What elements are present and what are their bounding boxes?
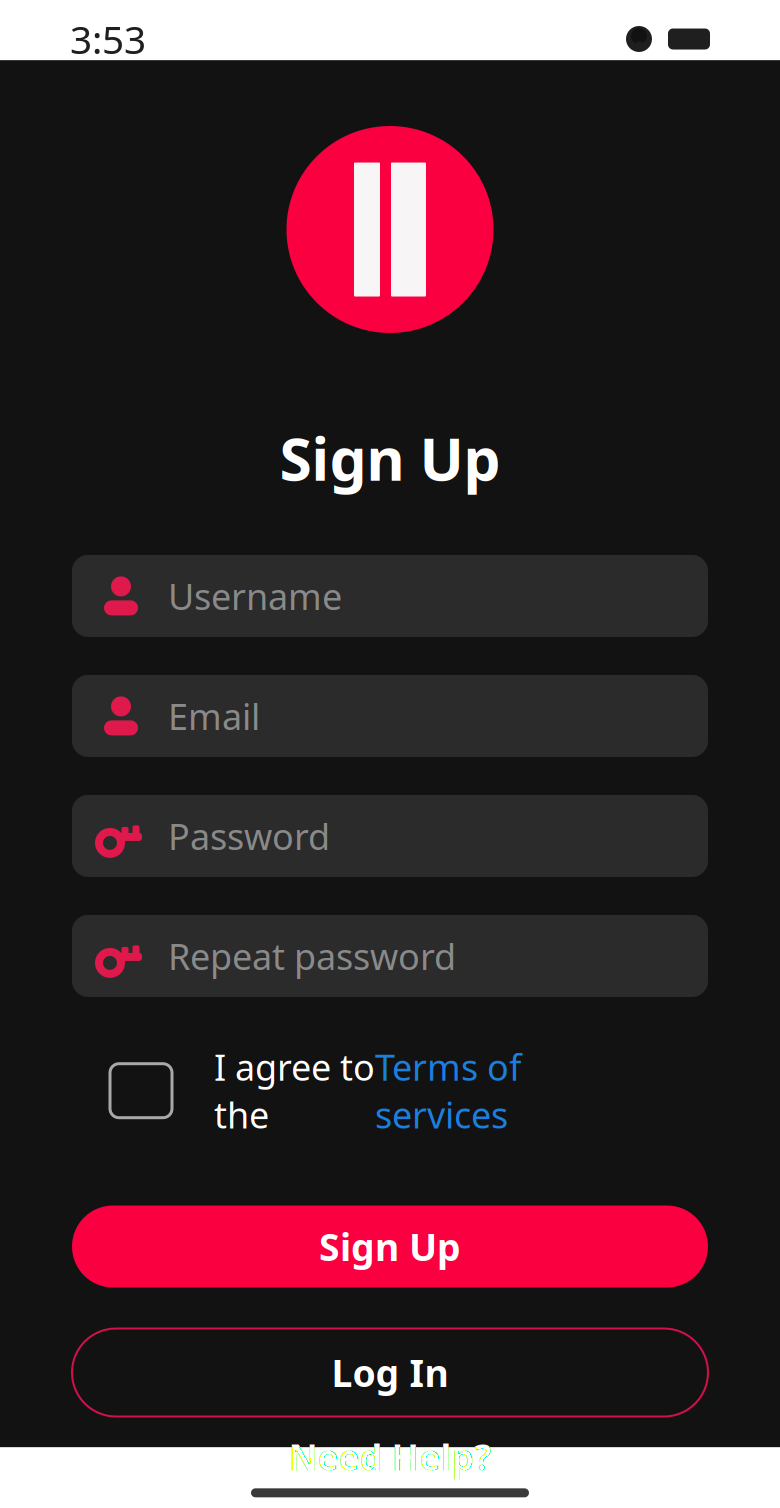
staticText: Need Help? — [288, 1432, 491, 1480]
button[interactable]: Log In — [72, 1328, 708, 1416]
button[interactable]: Need Help? — [288, 1432, 491, 1480]
staticText: Log In — [331, 1348, 448, 1397]
staticText: Terms of services — [375, 1043, 521, 1138]
staticText: Email — [168, 692, 260, 740]
button[interactable]: Password — [72, 795, 708, 877]
button[interactable]: Sign Up — [72, 1205, 708, 1287]
staticText: Repeat password — [168, 932, 456, 980]
staticText: Sign Up — [279, 419, 500, 497]
staticText: 3:53 — [70, 13, 146, 65]
staticText: Sign Up — [319, 1222, 461, 1271]
button[interactable]: Email — [72, 675, 708, 757]
staticText: I agree to the — [214, 1043, 375, 1138]
staticText: Password — [168, 812, 330, 860]
staticText: Username — [168, 572, 342, 620]
button[interactable]: Terms of services — [375, 1043, 521, 1138]
button[interactable]: Agree to terms checkbox — [110, 1064, 172, 1118]
button[interactable]: Username — [72, 555, 708, 637]
button[interactable]: Repeat password — [72, 915, 708, 997]
